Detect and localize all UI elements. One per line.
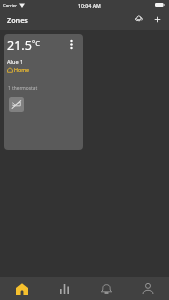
staticText: 10:04 AM [78,2,101,9]
button[interactable]: Add zone [150,12,164,26]
staticText: Alue 1 [7,58,24,66]
staticText: 1 thermostat [8,85,38,92]
staticText: Home [14,66,30,73]
button[interactable]: Download [132,12,146,26]
button[interactable]: Thermostat disabled [9,97,24,112]
staticText: Carrier [3,2,17,8]
button[interactable]: Home [0,277,43,300]
button[interactable]: Profile [127,277,169,300]
button[interactable]: 21.5 [4,34,83,150]
staticText: °C [32,38,41,48]
staticText: 21.5 [7,37,32,54]
button[interactable]: More options [65,38,78,51]
button[interactable]: Notifications [85,277,127,300]
button[interactable]: Statistics [43,277,85,300]
staticText: Zones [7,15,28,25]
